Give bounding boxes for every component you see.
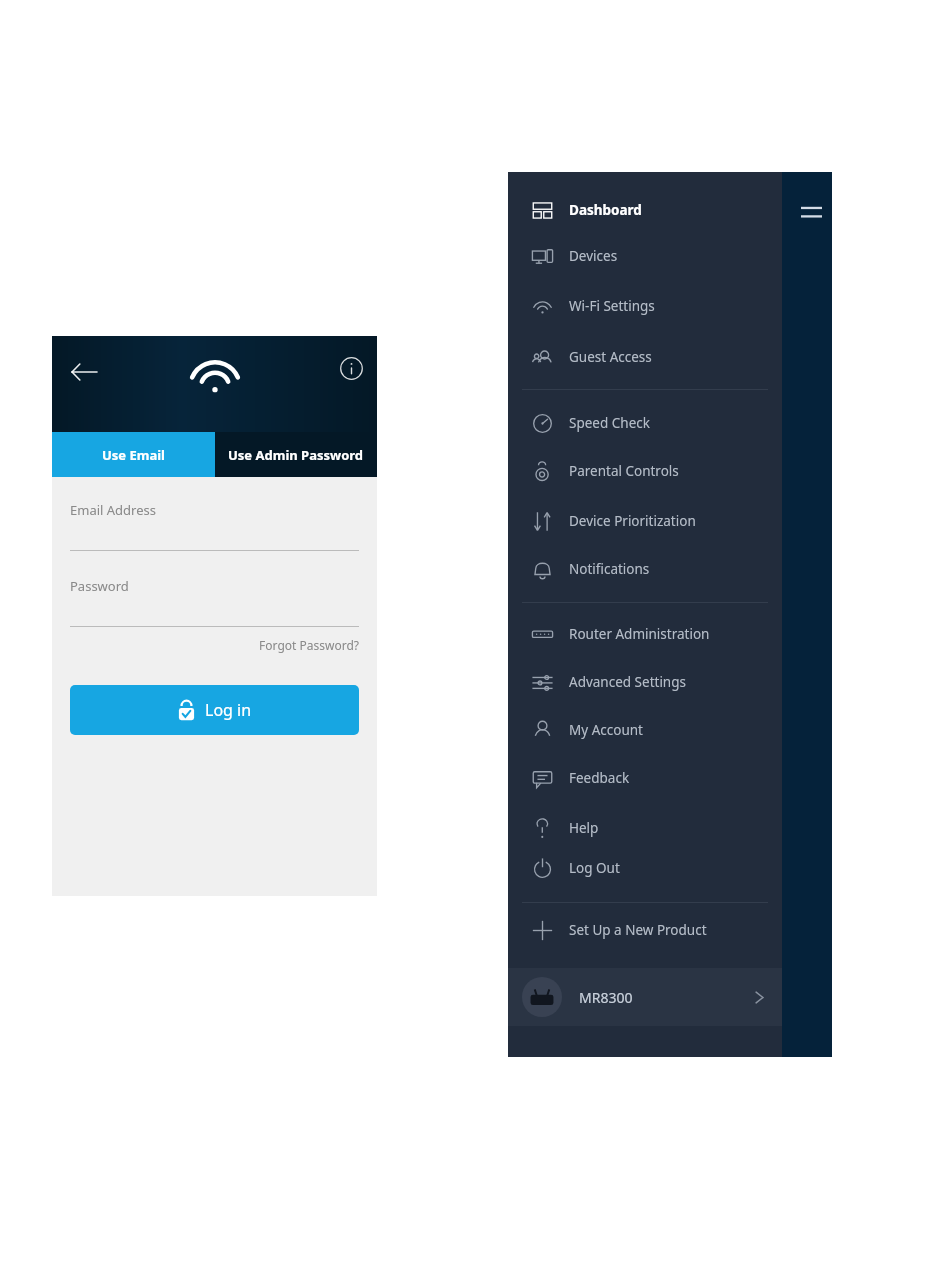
button[interactable]: Parental Controls — [508, 449, 782, 493]
button[interactable]: Wi-Fi Settings — [508, 284, 782, 328]
button[interactable]: Set Up a New Product — [508, 908, 782, 952]
staticText: Wi-Fi Settings — [569, 297, 655, 315]
button[interactable]: Use Email — [52, 432, 215, 477]
staticText: Set Up a New Product — [569, 921, 707, 939]
staticText: Speed Check — [569, 414, 650, 432]
button[interactable]: Feedback — [508, 756, 782, 800]
staticText: Notifications — [569, 560, 650, 578]
staticText: Password — [70, 577, 129, 595]
button[interactable]: Device Prioritization — [508, 499, 782, 543]
staticText: Feedback — [569, 769, 630, 787]
staticText: MR8300 — [579, 988, 633, 1007]
staticText: Log in — [205, 699, 252, 721]
button[interactable]: Notifications — [508, 547, 782, 591]
button[interactable]: Back — [62, 350, 106, 394]
button[interactable]: Information — [329, 346, 373, 390]
staticText: My Account — [569, 721, 643, 739]
staticText: Parental Controls — [569, 462, 679, 480]
staticText: Advanced Settings — [569, 673, 686, 691]
staticText: Use Admin Password — [228, 446, 364, 464]
button[interactable]: Advanced Settings — [508, 660, 782, 704]
staticText: Email Address — [70, 501, 156, 519]
button[interactable]: My Account — [508, 708, 782, 752]
staticText: Device Prioritization — [569, 512, 696, 530]
button[interactable]: Dashboard — [508, 188, 782, 232]
staticText: Help — [569, 819, 599, 837]
button[interactable]: Forgot Password? — [212, 632, 359, 658]
staticText: Router Administration — [569, 625, 710, 643]
staticText: Forgot Password? — [259, 637, 359, 653]
staticText: Log Out — [569, 859, 620, 877]
staticText: Guest Access — [569, 348, 652, 366]
button[interactable]: Router Administration — [508, 612, 782, 656]
button[interactable]: Help — [508, 806, 782, 850]
button[interactable]: Guest Access — [508, 335, 782, 379]
button[interactable]: Menu — [792, 193, 830, 231]
staticText: Dashboard — [569, 201, 642, 219]
button[interactable]: Log in — [70, 685, 359, 735]
button[interactable]: Use Admin Password — [215, 432, 377, 477]
button[interactable]: Log Out — [508, 846, 782, 890]
button[interactable]: Speed Check — [508, 401, 782, 445]
button[interactable]: Devices — [508, 234, 782, 278]
staticText: Devices — [569, 247, 618, 265]
staticText: Use Email — [102, 446, 165, 464]
button[interactable]: MR8300 — [508, 968, 782, 1026]
